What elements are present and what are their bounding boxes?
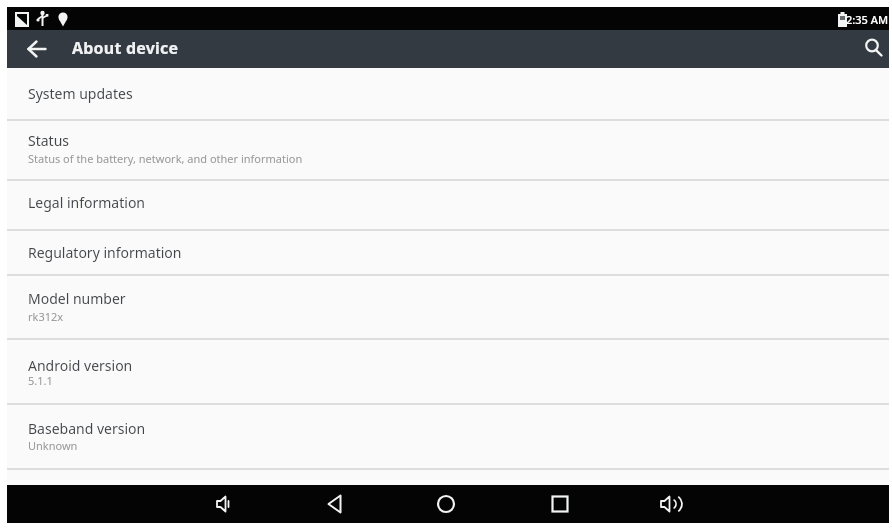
staticText: Regulatory information (28, 243, 182, 262)
button[interactable] (7, 181, 889, 229)
staticText: 5.1.1 (28, 373, 53, 388)
staticText: Model number (28, 289, 126, 308)
staticText: About device (72, 37, 179, 59)
staticText: System updates (28, 84, 133, 103)
button[interactable] (7, 68, 889, 119)
button[interactable] (21, 34, 53, 64)
button[interactable] (208, 488, 240, 520)
button[interactable] (652, 488, 684, 520)
staticText: Unknown (28, 438, 78, 453)
staticText: 2:35 AM (846, 12, 889, 27)
button[interactable] (7, 405, 889, 468)
staticText: Baseband version (28, 419, 146, 438)
staticText: Status (28, 131, 70, 150)
button[interactable] (544, 488, 576, 520)
staticText: Status of the battery, network, and othe… (28, 151, 303, 166)
button[interactable] (7, 121, 889, 179)
button[interactable] (430, 488, 462, 520)
button[interactable] (859, 33, 889, 63)
button[interactable] (7, 231, 889, 274)
staticText: Legal information (28, 193, 146, 212)
button[interactable] (7, 276, 889, 338)
staticText: rk312x (28, 309, 64, 324)
button[interactable] (7, 340, 889, 403)
button[interactable] (319, 488, 351, 520)
staticText: Android version (28, 356, 133, 375)
